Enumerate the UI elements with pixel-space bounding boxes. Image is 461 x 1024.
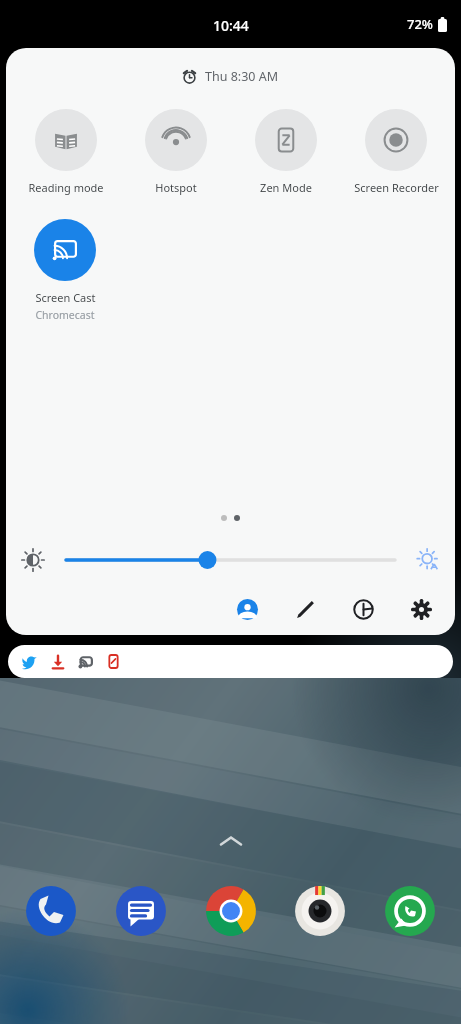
button[interactable]: Power: [349, 595, 377, 623]
button[interactable]: Screen Cast: [10, 217, 120, 324]
button[interactable]: Settings: [407, 595, 435, 623]
button[interactable]: Messages: [112, 882, 170, 940]
button[interactable]: Phone: [22, 882, 80, 940]
button[interactable]: Camera: [291, 882, 349, 940]
button[interactable]: WhatsApp: [381, 882, 439, 940]
staticText: Hotspot: [155, 180, 197, 195]
staticText: 72%: [407, 15, 433, 33]
button[interactable]: Reading mode: [10, 107, 121, 197]
staticText: Screen Recorder: [354, 180, 439, 195]
button[interactable]: Edit: [291, 595, 319, 623]
button[interactable]: [8, 645, 453, 678]
staticText: Reading mode: [28, 180, 104, 195]
staticText: Zen Mode: [260, 180, 312, 195]
staticText: Chromecast: [35, 308, 95, 322]
button[interactable]: User: [233, 595, 261, 623]
staticText: Screen Cast: [35, 290, 96, 305]
button[interactable]: [66, 549, 395, 571]
button[interactable]: Chrome: [202, 882, 260, 940]
staticText: Thu 8:30 AM: [205, 68, 279, 85]
staticText: 10:44: [213, 16, 249, 35]
button[interactable]: Zen Mode: [231, 107, 341, 197]
button[interactable]: Hotspot: [121, 107, 231, 197]
button[interactable]: Screen Recorder: [341, 107, 451, 197]
